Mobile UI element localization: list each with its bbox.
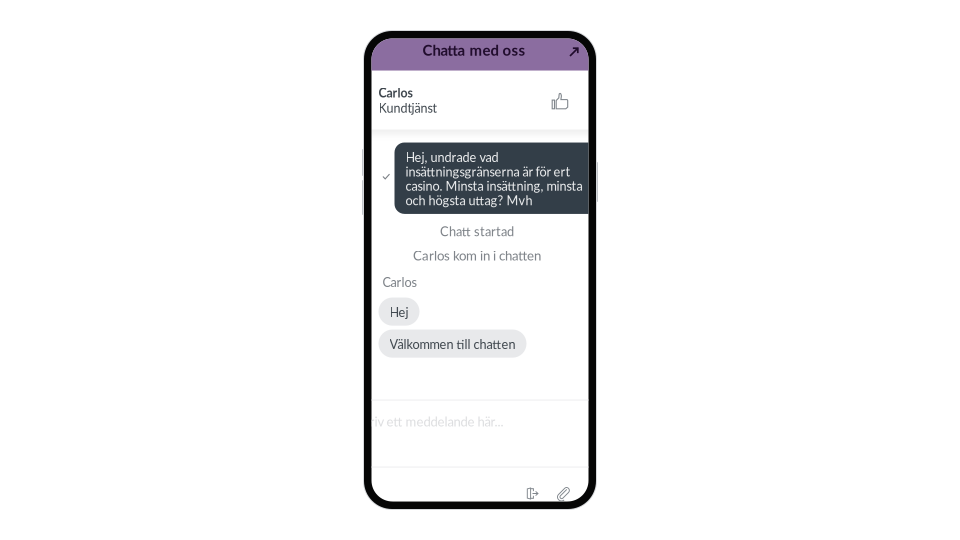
staticText: Carlos [378,85,412,100]
button[interactable]: Bifoga fil [371,38,397,64]
button[interactable]: Betygsätt konversationen [371,38,397,64]
staticText: Skriv ett meddelande här... [355,413,503,429]
staticText: Carlos kom in i chatten [413,247,541,263]
button[interactable]: Lämna chatten [371,38,397,64]
staticText: Välkommen till chatten [389,336,515,352]
staticText: Kundtjänst [378,100,436,115]
staticText: Hej [389,304,408,320]
button[interactable]: Skriv ett meddelande här [371,38,588,104]
staticText: Chatt startad [440,223,514,239]
staticText: Hej, undrade vad insättningsgränserna är… [405,149,582,208]
staticText: Chatta med oss [422,41,525,59]
staticText: Carlos [382,274,416,290]
button[interactable]: Chatta med oss [371,38,588,70]
button[interactable]: Öppna chatten i eget fönster [371,38,395,62]
